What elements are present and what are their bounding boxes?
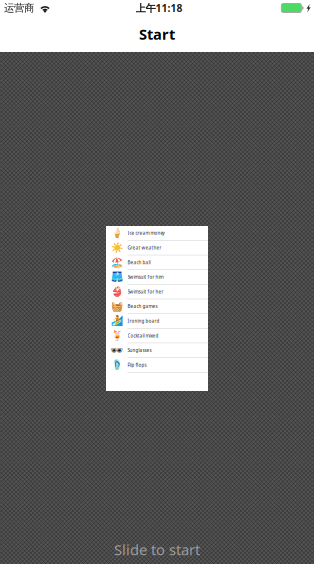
staticText: Flip flops (127, 362, 146, 368)
staticText: ☀️ (111, 242, 123, 253)
button[interactable]: 🍹 (106, 329, 208, 343)
staticText: 运营商 (4, 1, 34, 14)
staticText: Sunglasses (127, 347, 151, 353)
staticText: Cocktail mixed (127, 332, 158, 339)
button[interactable]: 🧺 (106, 299, 208, 314)
staticText: 🕶 (110, 344, 123, 356)
staticText: 🏄 (111, 315, 123, 327)
staticText: Ironing board (127, 318, 159, 324)
staticText: Great weather (127, 245, 161, 251)
staticText: 🍹 (111, 330, 123, 341)
button[interactable]: 🍦 (106, 226, 208, 241)
staticText: 🏖️ (111, 257, 123, 268)
staticText: Start (139, 24, 175, 44)
staticText: 🧺 (111, 300, 123, 312)
button[interactable]: ☀️ (106, 241, 208, 255)
staticText: 🩴 (111, 359, 123, 371)
staticText: 🩳 (111, 271, 123, 283)
button[interactable]: 🕶 (106, 343, 208, 358)
staticText: 👙 (111, 286, 123, 297)
staticText: Beach ball (127, 259, 150, 265)
staticText: 🍦 (111, 227, 123, 239)
staticText: 上午11:18 (135, 1, 182, 15)
staticText: Swimsuit for her (127, 289, 163, 295)
staticText: Beach games (127, 303, 157, 309)
staticText: Ice cream money (127, 230, 164, 236)
button[interactable]: 🏖️ (106, 255, 208, 270)
button[interactable]: 🩴 (106, 358, 208, 373)
staticText: Swimsuit for him (127, 274, 163, 280)
staticText: Slide to start (114, 539, 200, 559)
button[interactable]: 🏄 (106, 314, 208, 329)
button[interactable]: 👙 (106, 285, 208, 299)
button[interactable]: 🩳 (106, 270, 208, 285)
